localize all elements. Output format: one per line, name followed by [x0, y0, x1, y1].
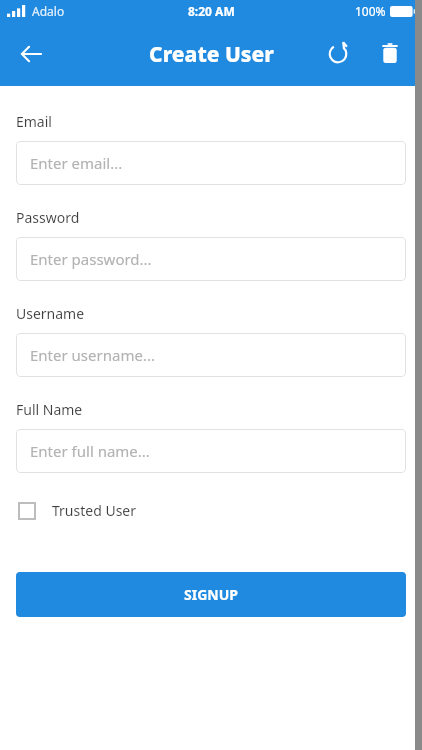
button[interactable]: Trusted User	[16, 497, 139, 524]
button[interactable]: Enter password...	[16, 237, 406, 281]
staticText: 100%	[355, 3, 386, 19]
staticText: Password	[16, 208, 80, 227]
staticText: Enter email...	[30, 153, 123, 173]
staticText: Enter full name...	[30, 441, 150, 461]
staticText: Email	[16, 112, 52, 131]
staticText: Enter username...	[30, 345, 155, 365]
staticText: SIGNUP	[184, 585, 238, 604]
staticText: Enter password...	[30, 249, 152, 269]
staticText: Username	[16, 304, 85, 323]
staticText: Create User	[149, 40, 274, 69]
staticText: Adalo	[32, 3, 65, 19]
staticText: Full Name	[16, 400, 83, 419]
button[interactable]: Delete	[368, 32, 412, 76]
button[interactable]: Enter username...	[16, 333, 406, 377]
staticText: Trusted User	[52, 501, 137, 520]
button[interactable]: SIGNUP	[16, 572, 406, 617]
button[interactable]: Back	[8, 31, 54, 77]
button[interactable]: Refresh	[316, 32, 360, 76]
staticText: 8:20 AM	[188, 3, 235, 19]
button[interactable]: Enter email...	[16, 141, 406, 185]
button[interactable]: Enter full name...	[16, 429, 406, 473]
